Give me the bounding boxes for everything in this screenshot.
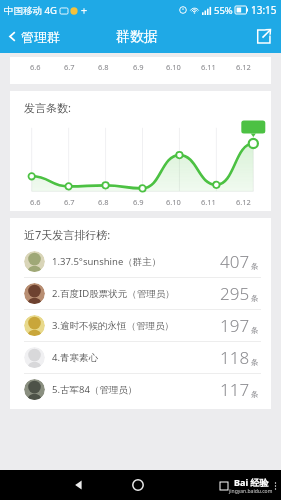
staticText: 近7天发言排行榜:	[24, 227, 111, 242]
staticText: 2.百度ID股票状元（管理员）	[52, 287, 175, 300]
staticText: 6.8	[98, 197, 109, 207]
staticText: 407	[220, 250, 250, 273]
staticText: 6.10	[166, 197, 181, 207]
staticText: 4.青寒素心	[52, 351, 98, 364]
staticText: 295	[220, 282, 250, 305]
staticText: 117	[220, 378, 250, 401]
staticText: Bai 经验	[234, 476, 269, 488]
staticText: 6.6	[30, 197, 41, 207]
button[interactable]: 5.古军84（管理员）	[10, 374, 271, 405]
staticText: 1.37.5°sunshine（群主）	[52, 255, 162, 268]
staticText: 发言条数:	[24, 100, 71, 115]
staticText: 条	[251, 390, 259, 399]
staticText: 条	[251, 326, 259, 335]
button[interactable]: 4.青寒素心	[10, 342, 271, 373]
button[interactable]: 2.百度ID股票状元（管理员）	[10, 278, 271, 309]
staticText: 群数据	[116, 28, 158, 46]
button[interactable]: Back	[68, 474, 90, 496]
staticText: 6.12	[236, 62, 251, 72]
staticText: 条	[251, 358, 259, 367]
staticText: 条	[251, 262, 259, 271]
staticText: 中国移动 4G	[4, 4, 57, 17]
staticText: 5.古军84（管理员）	[52, 383, 138, 396]
staticText: 6.11	[201, 62, 216, 72]
staticText: 6.12	[236, 197, 251, 207]
staticText: 6.9	[133, 197, 144, 207]
button[interactable]: Home	[127, 474, 149, 496]
button[interactable]: Share	[246, 20, 281, 53]
staticText: 条	[251, 294, 259, 303]
staticText: 6.7	[64, 197, 75, 207]
staticText: 13:15	[251, 3, 277, 17]
staticText: 6.9	[133, 62, 144, 72]
staticText: 3.逾时不候的永恒（管理员）	[52, 319, 174, 332]
staticText: 6.6	[30, 62, 41, 72]
staticText: jingyan.baidu.com	[229, 488, 273, 495]
staticText: 6.8	[98, 62, 109, 72]
staticText: 6.11	[201, 197, 216, 207]
button[interactable]: 1.37.5°sunshine（群主）	[10, 246, 271, 277]
staticText: 118	[220, 346, 250, 369]
staticText: 管理群	[21, 29, 60, 45]
staticText: 197	[220, 314, 250, 337]
button[interactable]: 管理群	[0, 20, 66, 53]
staticText: 6.7	[64, 62, 75, 72]
staticText: 6.10	[166, 62, 181, 72]
button[interactable]: 3.逾时不候的永恒（管理员）	[10, 310, 271, 341]
staticText: 55%	[214, 4, 233, 17]
